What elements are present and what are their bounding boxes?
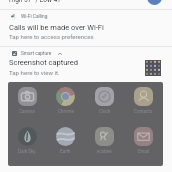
staticText: Earth — [60, 149, 71, 154]
staticText: Tap here to view it. — [9, 69, 60, 76]
other: Screenshot — [12, 51, 17, 56]
button[interactable]: ecobee — [85, 122, 124, 162]
staticText: Chrome — [58, 109, 74, 114]
staticText: Camera — [19, 109, 35, 114]
other: Wi-Fi calling — [11, 14, 16, 19]
staticText: Calls will be made over Wi-Fi — [9, 23, 104, 32]
staticText: High 57° / Low 41° — [9, 0, 64, 4]
button[interactable]: Screenshot — [0, 47, 172, 82]
button[interactable]: Contacts — [124, 82, 163, 122]
button[interactable]: Dark Sky — [8, 122, 46, 162]
button[interactable]: Email — [124, 122, 163, 162]
button[interactable]: Wi-Fi calling — [0, 10, 172, 46]
staticText: Email — [138, 149, 150, 154]
staticText: Screenshot captured — [9, 58, 79, 67]
staticText: Dark Sky — [18, 149, 36, 154]
button[interactable]: Clock — [85, 82, 124, 122]
staticText: Clock — [99, 109, 111, 114]
staticText: Contacts — [134, 109, 153, 114]
button[interactable]: Chrome — [46, 82, 85, 122]
staticText: Wi-Fi Calling — [21, 14, 48, 20]
staticText: Tap here to access preferences — [9, 33, 94, 40]
button[interactable]: Earth — [46, 122, 85, 162]
button[interactable]: High 57° / Low 41° — [0, 0, 172, 9]
staticText: ecobee — [97, 149, 112, 154]
staticText: Smart capture — [21, 51, 52, 57]
button[interactable]: Camera — [8, 82, 46, 122]
